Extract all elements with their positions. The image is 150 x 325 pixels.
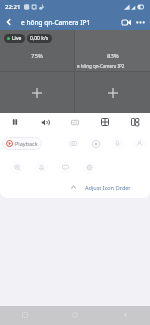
button[interactable]: Volume — [30, 113, 60, 131]
button[interactable]: Playback — [2, 137, 42, 150]
button[interactable]: Screenshot — [67, 137, 80, 150]
button[interactable]: Adjust Icon Order — [0, 178, 150, 196]
button[interactable]: Grid layout — [90, 113, 120, 131]
button[interactable]: Messages — [59, 161, 72, 174]
staticText: 75% — [31, 52, 43, 60]
staticText: 83% — [107, 52, 119, 60]
staticText: 22:21 — [5, 3, 21, 11]
button[interactable]: Split view — [120, 113, 150, 131]
button[interactable]: More options — [134, 16, 147, 29]
button[interactable]: Alarm — [35, 161, 48, 174]
staticText: e hông qn-Camera IP1 — [21, 18, 91, 27]
button[interactable]: Settings — [83, 161, 96, 174]
button[interactable]: Person detection — [133, 137, 146, 150]
button[interactable]: Pause — [0, 113, 30, 131]
staticText: 0,00 k/s — [30, 35, 49, 42]
button[interactable]: Record — [89, 137, 102, 150]
button[interactable]: Add camera — [75, 72, 150, 113]
button[interactable]: Add camera — [0, 72, 74, 113]
button[interactable]: Zoom — [11, 161, 24, 174]
button[interactable]: Record video — [120, 16, 133, 29]
staticText: Playback — [15, 140, 38, 147]
button[interactable]: Stream quality — [60, 113, 90, 131]
staticText: Live — [12, 35, 22, 42]
button[interactable]: Live — [0, 30, 74, 71]
staticText: e hông qn-Camera IP2 — [77, 63, 125, 69]
staticText: Adjust Icon Order — [85, 184, 131, 191]
button[interactable]: Back — [2, 15, 16, 29]
button[interactable]: Two-way talk — [111, 137, 124, 150]
button[interactable]: 83% — [75, 30, 150, 71]
